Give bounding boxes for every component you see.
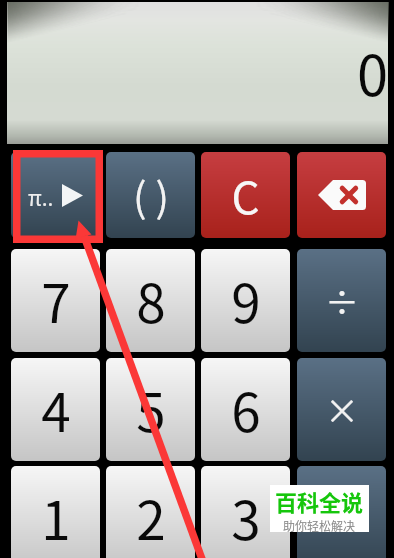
staticText: ÷ — [325, 276, 359, 325]
staticText: 5 — [136, 371, 166, 448]
button[interactable]: 8 — [106, 249, 195, 352]
button[interactable]: 5 — [106, 358, 195, 461]
staticText: 9 — [231, 262, 261, 339]
staticText: π.. — [28, 182, 54, 212]
button[interactable]: Backspace — [297, 152, 386, 238]
button[interactable]: ÷ — [297, 249, 386, 352]
staticText: 百科全说 — [275, 485, 364, 517]
button[interactable]: − — [297, 466, 386, 558]
staticText: 7 — [41, 262, 71, 339]
button[interactable]: 7 — [11, 249, 100, 352]
button[interactable]: 4 — [11, 358, 100, 461]
staticText: 3 — [231, 479, 261, 556]
staticText: 1 — [41, 479, 71, 556]
button[interactable]: 9 — [201, 249, 290, 352]
staticText: 4 — [41, 371, 71, 448]
staticText: 8 — [136, 262, 166, 339]
staticText: × — [325, 385, 359, 434]
button[interactable]: × — [297, 358, 386, 461]
button[interactable]: 6 — [201, 358, 290, 461]
staticText: 0 — [357, 31, 389, 112]
staticText: C — [231, 163, 260, 227]
button[interactable]: C — [201, 152, 290, 238]
button[interactable]: 1 — [11, 466, 100, 558]
staticText: ( ) — [133, 166, 169, 224]
staticText: 6 — [231, 371, 261, 448]
staticText: 助你轻松解决 — [283, 517, 356, 532]
button[interactable]: 2 — [106, 466, 195, 558]
button[interactable]: Functions — [11, 152, 100, 238]
staticText: − — [332, 493, 351, 542]
staticText: 2 — [136, 479, 166, 556]
button[interactable]: 3 — [201, 466, 290, 558]
button[interactable]: ( ) — [106, 152, 195, 238]
